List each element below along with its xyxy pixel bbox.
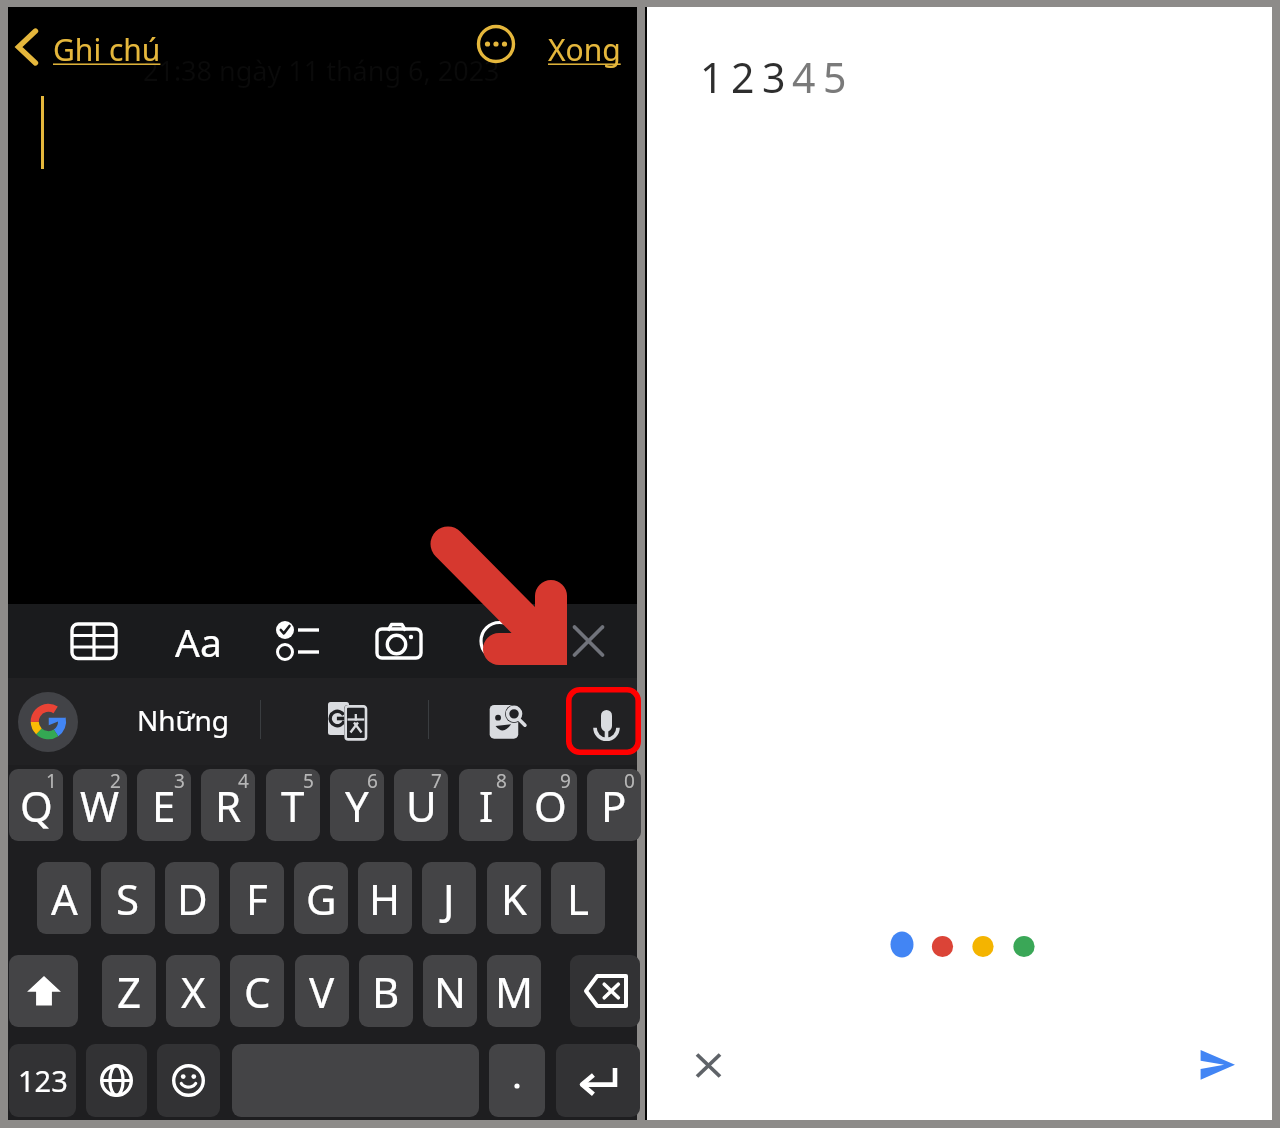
- button[interactable]: Back: [10, 23, 52, 65]
- staticText: R: [215, 777, 242, 834]
- button[interactable]: Camera: [377, 604, 425, 678]
- staticText: C: [244, 963, 271, 1020]
- staticText: F: [246, 870, 268, 927]
- staticText: W: [80, 777, 120, 834]
- button[interactable]: B: [359, 955, 413, 1027]
- staticText: 4: [238, 769, 249, 794]
- staticText: T: [281, 777, 305, 834]
- staticText: Z: [117, 963, 142, 1020]
- staticText: 123: [18, 1061, 68, 1100]
- staticText: 5: [303, 769, 314, 794]
- staticText: 2: [110, 769, 121, 794]
- staticText: D: [177, 870, 208, 927]
- button[interactable]: Send: [1193, 1043, 1243, 1093]
- button[interactable]: Shift: [9, 955, 78, 1027]
- button[interactable]: Những: [137, 701, 229, 739]
- button[interactable]: C: [230, 955, 284, 1027]
- button[interactable]: P: [587, 769, 641, 841]
- button[interactable]: L: [551, 862, 605, 934]
- button[interactable]: F: [230, 862, 284, 934]
- staticText: 5: [823, 49, 847, 105]
- staticText: S: [116, 870, 140, 927]
- staticText: J: [443, 870, 455, 927]
- button[interactable]: U: [394, 769, 448, 841]
- staticText: X: [181, 963, 206, 1020]
- button[interactable]: A: [37, 862, 91, 934]
- button[interactable]: Insert table: [72, 604, 120, 678]
- button[interactable]: S: [101, 862, 155, 934]
- staticText: V: [309, 963, 335, 1020]
- button[interactable]: O: [523, 769, 577, 841]
- button[interactable]: E: [137, 769, 191, 841]
- staticText: L: [567, 870, 590, 927]
- staticText: 2: [731, 49, 755, 105]
- button[interactable]: G: [294, 862, 348, 934]
- staticText: Q: [20, 777, 53, 834]
- button[interactable]: Xong: [548, 29, 621, 70]
- button[interactable]: Period: [489, 1044, 545, 1117]
- button[interactable]: H: [358, 862, 412, 934]
- staticText: 4: [792, 49, 816, 105]
- staticText: 3: [762, 49, 786, 105]
- staticText: 8: [496, 769, 507, 794]
- button[interactable]: V: [295, 955, 349, 1027]
- staticText: U: [406, 777, 437, 834]
- button[interactable]: D: [165, 862, 219, 934]
- staticText: B: [372, 963, 400, 1020]
- staticText: Y: [345, 777, 369, 834]
- button[interactable]: I: [459, 769, 513, 841]
- staticText: M: [495, 963, 534, 1020]
- button[interactable]: Y: [330, 769, 384, 841]
- button[interactable]: X: [166, 955, 220, 1027]
- button[interactable]: Checklist: [276, 604, 324, 678]
- button[interactable]: Aa: [175, 615, 222, 668]
- staticText: 1: [46, 769, 57, 794]
- button[interactable]: Google: [18, 692, 78, 752]
- staticText: I: [479, 777, 494, 834]
- button[interactable]: M: [487, 955, 541, 1027]
- staticText: K: [501, 870, 527, 927]
- button[interactable]: K: [487, 862, 541, 934]
- staticText: P: [601, 777, 627, 834]
- button[interactable]: N: [423, 955, 477, 1027]
- staticText: E: [152, 777, 176, 834]
- button[interactable]: Translate: [326, 700, 368, 742]
- button[interactable]: Emoji: [157, 1044, 220, 1117]
- staticText: 0: [624, 769, 635, 794]
- button[interactable]: Google Lens: [488, 700, 530, 742]
- button[interactable]: Change language: [86, 1044, 147, 1117]
- button[interactable]: More options: [473, 21, 519, 67]
- staticText: A: [51, 870, 78, 927]
- staticText: G: [306, 870, 337, 927]
- staticText: 7: [431, 769, 442, 794]
- button[interactable]: Close keyboard: [574, 604, 622, 678]
- button[interactable]: Enter: [556, 1044, 640, 1117]
- staticText: 1: [700, 49, 724, 105]
- staticText: 3: [174, 769, 185, 794]
- button[interactable]: Q: [9, 769, 63, 841]
- button[interactable]: Numbers: [9, 1044, 76, 1117]
- button[interactable]: Z: [102, 955, 156, 1027]
- staticText: H: [369, 870, 401, 927]
- button[interactable]: W: [73, 769, 127, 841]
- staticText: O: [534, 777, 567, 834]
- button[interactable]: Cancel: [686, 1043, 732, 1089]
- button[interactable]: Ghi chú: [53, 29, 161, 70]
- button[interactable]: Backspace: [570, 955, 640, 1027]
- staticText: 21:38 ngày 11 tháng 6, 2023: [143, 52, 500, 89]
- button[interactable]: Voice input: [566, 687, 641, 755]
- staticText: N: [434, 963, 466, 1020]
- button[interactable]: Markup: [481, 604, 529, 678]
- button[interactable]: T: [266, 769, 320, 841]
- button[interactable]: R: [201, 769, 255, 841]
- button[interactable]: J: [422, 862, 476, 934]
- staticText: 6: [367, 769, 378, 794]
- staticText: 9: [560, 769, 571, 794]
